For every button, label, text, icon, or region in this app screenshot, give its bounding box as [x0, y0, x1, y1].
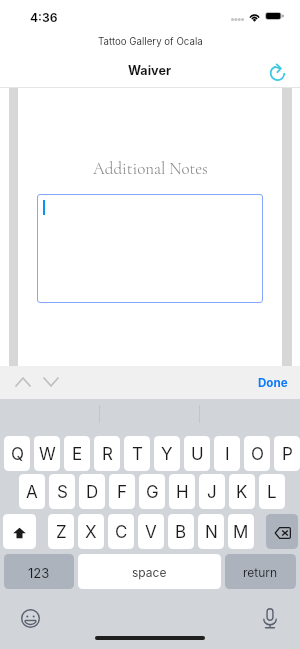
button[interactable]: V [138, 514, 164, 549]
staticText: U [191, 444, 204, 465]
staticText: H [176, 482, 189, 503]
staticText: V [145, 522, 157, 543]
staticText: P [282, 444, 293, 465]
staticText: O [251, 444, 264, 465]
staticText: S [57, 482, 68, 503]
staticText: J [207, 482, 217, 503]
button[interactable]: Done [252, 369, 294, 396]
staticText: Z [56, 522, 67, 543]
button[interactable]: return [225, 554, 296, 589]
staticText: Waiver [128, 63, 172, 78]
staticText: W [39, 444, 56, 465]
button[interactable]: Z [48, 514, 74, 549]
button[interactable]: Previous field [10, 369, 36, 395]
button[interactable]: F [109, 474, 135, 509]
staticText: L [267, 482, 277, 503]
staticText: F [117, 482, 128, 503]
button[interactable]: Shift [3, 514, 36, 549]
button[interactable]: P [274, 436, 300, 471]
button[interactable]: I [214, 436, 240, 471]
button[interactable]: J [199, 474, 225, 509]
staticText: B [175, 522, 187, 543]
button[interactable]: B [168, 514, 194, 549]
button[interactable]: Emoji keyboard [17, 605, 43, 631]
button[interactable] [37, 194, 263, 303]
button[interactable]: W [34, 436, 60, 471]
staticText: G [146, 482, 159, 503]
button[interactable]: T [124, 436, 150, 471]
button[interactable]: K [229, 474, 255, 509]
button[interactable]: C [108, 514, 134, 549]
staticText: T [132, 444, 143, 465]
button[interactable]: N [198, 514, 224, 549]
button[interactable]: G [139, 474, 165, 509]
staticText: X [85, 522, 97, 543]
button[interactable]: E [64, 436, 90, 471]
staticText: Q [11, 444, 24, 465]
button[interactable]: Q [4, 436, 30, 471]
staticText: Done [258, 376, 288, 390]
staticText: C [115, 522, 128, 543]
staticText: Additional Notes [93, 158, 208, 178]
button[interactable]: Dictation [257, 605, 283, 631]
staticText: A [26, 482, 38, 503]
button[interactable]: Next field [38, 369, 64, 395]
button[interactable]: O [244, 436, 270, 471]
staticText: R [102, 444, 113, 465]
button[interactable]: R [94, 436, 120, 471]
staticText: E [72, 444, 83, 465]
button[interactable]: Backspace [266, 514, 298, 549]
button[interactable]: space [78, 554, 221, 589]
staticText: M [233, 522, 249, 543]
button[interactable]: U [184, 436, 210, 471]
staticText: I [225, 444, 230, 465]
staticText: 4:36 [30, 10, 58, 25]
button[interactable]: S [49, 474, 75, 509]
staticText: N [205, 522, 218, 543]
button[interactable]: D [79, 474, 105, 509]
button[interactable]: Y [154, 436, 180, 471]
staticText: Tattoo Gallery of Ocala [98, 36, 203, 48]
button[interactable]: Reload [262, 54, 294, 90]
staticText: space [132, 565, 167, 580]
staticText: D [86, 482, 99, 503]
staticText: Y [161, 444, 173, 465]
button[interactable]: X [78, 514, 104, 549]
button[interactable]: M [228, 514, 254, 549]
button[interactable]: 123 [4, 554, 74, 589]
button[interactable]: A [19, 474, 45, 509]
button[interactable]: H [169, 474, 195, 509]
button[interactable]: L [259, 474, 285, 509]
staticText: return [243, 565, 278, 580]
staticText: K [236, 482, 248, 503]
staticText: 123 [28, 565, 50, 581]
